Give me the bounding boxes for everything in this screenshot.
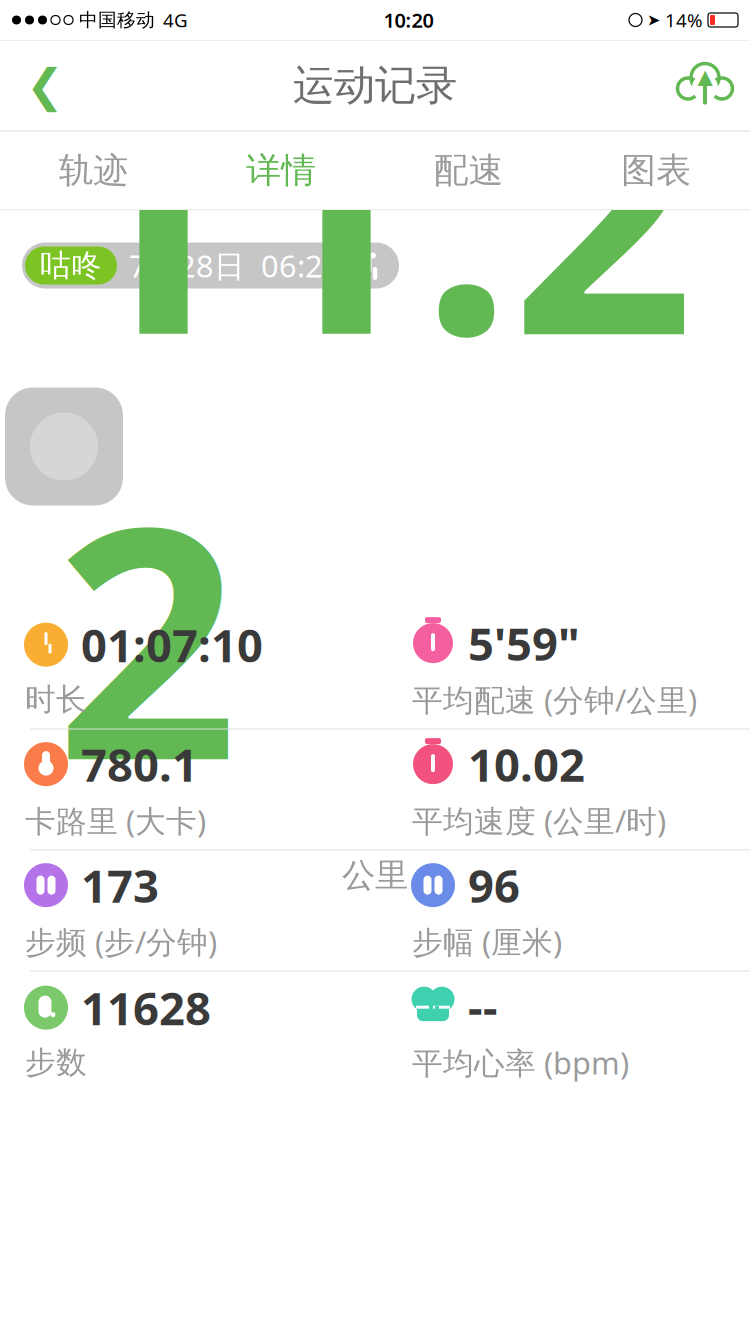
staticText: 时长 [25, 681, 87, 718]
staticText: 7月28日 06:28 [129, 245, 341, 286]
staticText: 详情 [246, 149, 316, 192]
staticText: 轨迹 [59, 149, 129, 192]
staticText: 中国移动 [79, 8, 155, 31]
staticText: 5'59" [468, 613, 580, 673]
staticText: 173 [81, 855, 159, 915]
staticText: 10:20 [383, 7, 433, 33]
staticText: ➤ [647, 11, 660, 29]
staticText: 96 [468, 855, 520, 915]
staticText: 11.22 [55, 0, 694, 847]
staticText: 01:07:10 [81, 615, 263, 675]
staticText: 平均心率 (bpm) [412, 1042, 629, 1083]
staticText: ▲ [697, 65, 712, 88]
staticText: 运动记录 [293, 60, 457, 111]
staticText: 平均配速 (分钟/公里) [412, 679, 697, 720]
staticText: 780.1 [81, 734, 198, 794]
staticText: 14% [665, 8, 703, 32]
staticText: 步数 [25, 1044, 87, 1081]
staticText: 4G [163, 8, 188, 32]
staticText: 配速 [434, 149, 504, 192]
staticText: 卡路里 (大卡) [25, 800, 206, 841]
staticText: 公里 [342, 855, 408, 896]
staticText: ❮ [26, 60, 64, 111]
button[interactable]: Upload [670, 50, 740, 120]
button[interactable]: 轨迹 [0, 131, 187, 209]
button[interactable]: 图表 [562, 131, 750, 209]
staticText: 平均速度 (公里/时) [412, 800, 666, 841]
staticText: 11628 [81, 978, 211, 1038]
button[interactable]: 配速 [375, 131, 562, 209]
staticText: 步频 (步/分钟) [25, 921, 217, 962]
staticText: -- [468, 976, 498, 1036]
staticText: 图表 [621, 149, 691, 192]
staticText: 10.02 [468, 734, 585, 794]
button[interactable]: 详情 [187, 131, 375, 209]
staticText: 咕咚 [40, 247, 102, 284]
staticText: 步幅 (厘米) [412, 921, 562, 962]
button[interactable]: Back [10, 50, 80, 120]
